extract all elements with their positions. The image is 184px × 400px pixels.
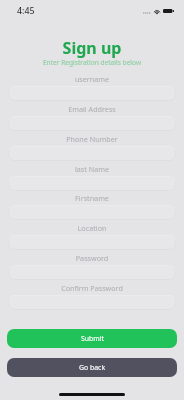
button[interactable]: Go back	[7, 358, 177, 377]
staticText: Enter Registration details below	[0, 58, 184, 67]
staticText: username	[0, 74, 184, 84]
staticText: Firstname	[0, 193, 184, 203]
other: Battery	[163, 9, 174, 13]
staticText: Sign up	[0, 37, 184, 59]
staticText: Location	[0, 223, 184, 233]
other: Wi-Fi	[153, 9, 161, 14]
staticText: Email Address	[0, 104, 184, 114]
staticText: 4:45	[17, 5, 35, 17]
button[interactable]: Submit	[7, 329, 177, 348]
staticText: Password	[0, 253, 184, 263]
staticText: Phone Number	[0, 134, 184, 144]
staticText: Go back	[79, 363, 106, 372]
staticText: last Name	[0, 164, 184, 174]
staticText: Submit	[81, 334, 104, 343]
staticText: Confirm Password	[0, 283, 184, 293]
